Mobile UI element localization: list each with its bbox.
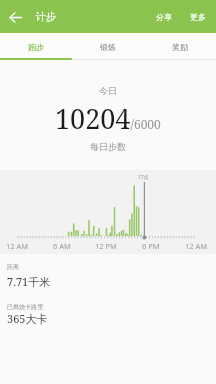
button[interactable]: 分享 [152, 6, 176, 28]
button[interactable]: Back [0, 2, 30, 32]
staticText: 12 PM [95, 241, 117, 251]
button[interactable]: 奖励 [144, 33, 216, 60]
staticText: 17点 [138, 174, 149, 181]
staticText: 奖励 [172, 42, 188, 52]
staticText: 12 AM [185, 241, 208, 251]
staticText: 锻炼 [100, 42, 116, 52]
staticText: 7.71千米 [7, 274, 51, 289]
staticText: 今日 [99, 85, 117, 96]
staticText: 365大卡 [7, 311, 48, 326]
staticText: 每日步数 [90, 141, 126, 152]
button[interactable]: 跑步 [0, 33, 72, 60]
staticText: 已燃烧卡路里 [7, 303, 43, 311]
staticText: 分享 [156, 12, 172, 22]
staticText: 距离 [7, 263, 19, 271]
staticText: 计步 [36, 10, 56, 23]
staticText: 6 PM [142, 241, 160, 251]
button[interactable]: 更多 [186, 6, 210, 28]
staticText: 6 AM [53, 241, 71, 251]
staticText: 跑步 [28, 42, 44, 52]
button[interactable]: 锻炼 [72, 33, 144, 60]
staticText: 10204/6000 [55, 100, 161, 137]
staticText: 更多 [190, 12, 206, 22]
staticText: 12 AM [6, 241, 29, 251]
